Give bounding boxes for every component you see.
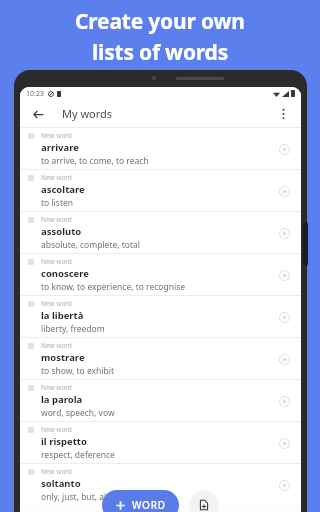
staticText: New word xyxy=(41,131,72,140)
button[interactable]: New word xyxy=(20,296,301,337)
staticText: New word xyxy=(41,467,72,476)
staticText: only, just, but, alone, merely xyxy=(41,491,154,503)
button[interactable]: Play pronunciation xyxy=(275,350,293,368)
staticText: liberty, freedom xyxy=(41,323,105,335)
staticText: ascoltare xyxy=(41,183,85,196)
staticText: respect, deference xyxy=(41,449,115,461)
staticText: il rispetto xyxy=(41,435,87,448)
staticText: conoscere xyxy=(41,267,90,280)
staticText: la libertà xyxy=(41,309,84,322)
staticText: soltanto xyxy=(41,477,81,490)
button[interactable]: New word xyxy=(20,464,301,505)
staticText: New word xyxy=(41,383,72,392)
staticText: New word xyxy=(41,215,72,224)
button[interactable]: New word xyxy=(20,212,301,253)
button[interactable]: More options xyxy=(273,104,293,124)
button[interactable]: Play pronunciation xyxy=(275,224,293,242)
staticText: New word xyxy=(41,341,72,350)
button[interactable]: Play pronunciation xyxy=(275,182,293,200)
button[interactable]: Play pronunciation xyxy=(275,308,293,326)
button[interactable]: New word xyxy=(20,128,301,169)
staticText: 10:23 xyxy=(26,89,44,99)
staticText: to know, to experience, to recognise xyxy=(41,281,186,293)
button[interactable]: WORD xyxy=(102,490,179,512)
staticText: New word xyxy=(41,425,72,434)
staticText: lists of words xyxy=(92,38,228,67)
staticText: WORD xyxy=(132,498,166,512)
staticText: to listen xyxy=(41,197,73,209)
staticText: arrivare xyxy=(41,141,79,154)
button[interactable]: New word xyxy=(20,380,301,421)
staticText: New word xyxy=(41,257,72,266)
staticText: My words xyxy=(62,106,113,121)
button[interactable]: Play pronunciation xyxy=(275,434,293,452)
button[interactable]: Back xyxy=(28,104,48,124)
button[interactable]: Play pronunciation xyxy=(275,266,293,284)
button[interactable]: Play pronunciation xyxy=(275,476,293,494)
staticText: to arrive, to come, to reach xyxy=(41,155,149,167)
staticText: assoluto xyxy=(41,225,82,238)
staticText: New word xyxy=(41,299,72,308)
button[interactable]: Play pronunciation xyxy=(275,392,293,410)
staticText: la parola xyxy=(41,393,83,406)
button[interactable]: Play pronunciation xyxy=(275,140,293,158)
staticText: to show, to exhibit xyxy=(41,365,115,377)
staticText: New word xyxy=(41,173,72,182)
button[interactable]: New word xyxy=(20,170,301,211)
button[interactable]: New word xyxy=(20,254,301,295)
staticText: Create your own xyxy=(75,7,245,36)
button[interactable]: Add from file xyxy=(189,490,219,512)
staticText: mostrare xyxy=(41,351,85,364)
button[interactable]: New word xyxy=(20,338,301,379)
staticText: word, speech, vow xyxy=(41,407,115,419)
staticText: absolute, complete, total xyxy=(41,239,140,251)
button[interactable]: New word xyxy=(20,422,301,463)
